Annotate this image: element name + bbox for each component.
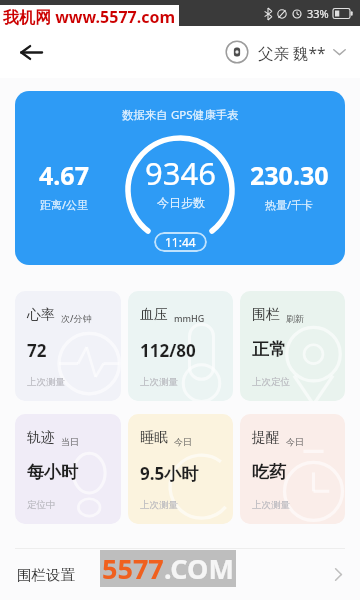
staticText: 我机网 www.5577.com (3, 6, 176, 28)
button[interactable]: Back (10, 31, 52, 73)
staticText: 11:44 (165, 234, 196, 250)
staticText: 睡眠 (140, 429, 168, 447)
staticText: 次/分钟 (61, 312, 92, 324)
staticText: 今日步数 (157, 195, 205, 210)
staticText: 围栏 (252, 306, 280, 324)
staticText: 距离/公里 (40, 197, 89, 212)
staticText: 刷新 (286, 313, 304, 324)
button[interactable]: 轨迹 (15, 414, 121, 524)
button[interactable]: 父亲 魏** (219, 34, 352, 70)
staticText: 今日 (174, 436, 192, 447)
button[interactable]: 围栏设置 (0, 549, 360, 600)
staticText: 提醒 (252, 429, 280, 447)
staticText: 230.30 (250, 158, 329, 192)
button[interactable]: 心率 (15, 291, 121, 401)
staticText: 上次测量 (140, 499, 178, 511)
staticText: 33% (307, 6, 329, 21)
staticText: 5577 (102, 550, 164, 587)
button[interactable]: 数据来自 GPS健康手表 (15, 91, 345, 265)
staticText: 轨迹 (27, 429, 55, 447)
staticText: 112/80 (140, 339, 196, 362)
staticText: 每小时 (27, 462, 78, 483)
staticText: 正常 (252, 339, 286, 360)
staticText: mmHG (174, 312, 205, 324)
button[interactable]: 睡眠 (128, 414, 233, 524)
staticText: 当日 (61, 436, 79, 447)
staticText: .COM (164, 550, 234, 587)
button[interactable]: 血压 (128, 291, 233, 401)
staticText: 数据来自 GPS健康手表 (122, 107, 239, 123)
staticText: 9.5小时 (140, 462, 199, 485)
staticText: 上次测量 (140, 376, 178, 388)
staticText: 上次测量 (252, 499, 290, 511)
button[interactable]: 围栏 (240, 291, 345, 401)
staticText: 上次定位 (252, 376, 290, 388)
staticText: 9346 (145, 152, 216, 194)
staticText: 4.67 (39, 158, 89, 192)
staticText: 今日 (286, 436, 304, 447)
staticText: 血压 (140, 306, 168, 324)
staticText: 热量/千卡 (265, 197, 314, 212)
staticText: 72 (27, 339, 47, 362)
staticText: 心率 (27, 306, 55, 324)
button[interactable]: 提醒 (240, 414, 345, 524)
staticText: 定位中 (27, 499, 56, 511)
staticText: 围栏设置 (17, 566, 75, 584)
staticText: 父亲 魏** (258, 42, 326, 63)
staticText: 吃药 (252, 462, 286, 483)
staticText: 上次测量 (27, 376, 65, 388)
